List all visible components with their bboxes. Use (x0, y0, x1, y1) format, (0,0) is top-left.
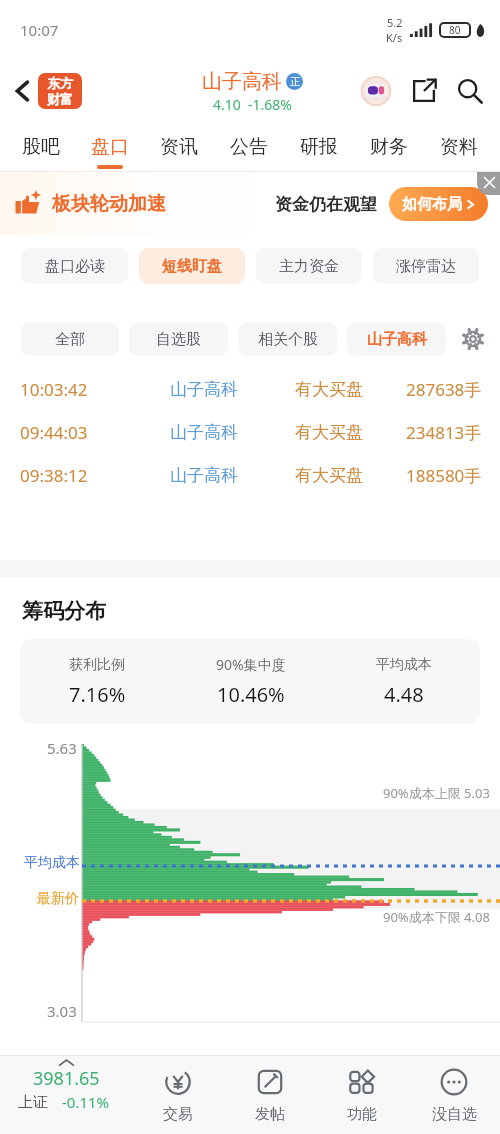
staticText: 盘口 (91, 135, 129, 159)
staticText: 平均成本 (24, 854, 80, 872)
staticText: 如何布局 (402, 195, 462, 214)
staticText: 自选股 (156, 330, 201, 349)
button[interactable]: 东方 (38, 73, 82, 109)
staticText: 287638手 (406, 378, 482, 401)
staticText: 交易 (163, 1105, 193, 1124)
button[interactable]: 研报 (284, 122, 354, 172)
button[interactable]: 自选股 (129, 322, 228, 356)
staticText: 没自选 (432, 1105, 477, 1124)
staticText: 相关个股 (258, 330, 318, 349)
staticText: 5.2 (387, 15, 403, 30)
staticText: 10:07 (20, 20, 59, 40)
staticText: 主力资金 (279, 257, 339, 276)
staticText: 板块轮动加速 (52, 192, 166, 216)
staticText: 234813手 (406, 421, 482, 444)
button[interactable]: Settings (456, 322, 490, 356)
staticText: 公告 (230, 135, 268, 159)
staticText: 东方 (47, 75, 73, 91)
button[interactable]: 如何布局 (389, 187, 488, 221)
staticText: 筹码分布 (22, 598, 106, 624)
staticText: 90%成本下限 4.08 (383, 908, 490, 926)
staticText: 山子高科 (170, 422, 238, 443)
button[interactable]: 相关个股 (238, 322, 337, 356)
staticText: 财富 (47, 91, 73, 107)
button[interactable]: 短线盯盘 (139, 248, 245, 284)
button[interactable]: 山子高科 (347, 322, 446, 356)
staticText: 涨停雷达 (396, 257, 456, 276)
staticText: 5.63 (47, 738, 77, 758)
staticText: 全部 (55, 330, 85, 349)
button[interactable]: Close banner (477, 172, 500, 195)
staticText: 获利比例 (69, 656, 125, 674)
button[interactable]: 财务 (354, 122, 424, 172)
staticText: K/s (386, 30, 403, 45)
staticText: 80 (449, 23, 461, 37)
button[interactable]: Share (406, 73, 442, 109)
staticText: 4.48 (384, 681, 424, 708)
button[interactable]: 3981.65 (0, 1056, 132, 1134)
button[interactable]: 盘口必读 (21, 248, 128, 284)
button[interactable]: 资讯 (144, 122, 214, 172)
button[interactable]: 交易 (132, 1056, 224, 1134)
button[interactable]: 发帖 (224, 1056, 316, 1134)
button[interactable]: 公告 (214, 122, 284, 172)
staticText: 资讯 (160, 135, 198, 159)
button[interactable]: 09:38:12 (0, 454, 500, 497)
button[interactable]: 10:03:42 (0, 368, 500, 411)
button[interactable]: 主力资金 (256, 248, 362, 284)
staticText: 股吧 (22, 135, 60, 159)
button[interactable]: Back (4, 72, 42, 110)
staticText: 3.03 (47, 1001, 77, 1021)
staticText: -0.11% (62, 1092, 110, 1112)
staticText: 资料 (440, 135, 478, 159)
staticText: 10.46% (217, 681, 285, 708)
staticText: 09:38:12 (20, 464, 88, 487)
button[interactable]: 涨停雷达 (373, 248, 479, 284)
staticText: 最新价 (37, 890, 79, 908)
staticText: 盘口必读 (45, 257, 105, 276)
button[interactable]: 09:44:03 (0, 411, 500, 454)
staticText: 资金仍在观望 (275, 194, 377, 215)
button[interactable]: 板块轮动加速 (0, 172, 500, 235)
staticText: 09:44:03 (20, 421, 88, 444)
staticText: 山子高科 (170, 379, 238, 400)
staticText: 有大买盘 (295, 422, 363, 443)
button[interactable]: 股吧 (6, 122, 75, 172)
staticText: 7.16% (69, 681, 126, 708)
staticText: 发帖 (255, 1105, 285, 1124)
staticText: 正 (290, 75, 300, 88)
staticText: 财务 (370, 135, 408, 159)
staticText: 研报 (300, 135, 338, 159)
staticText: 4.10 -1.68% (213, 95, 292, 114)
staticText: 功能 (347, 1105, 377, 1124)
staticText: 山子高科 (367, 330, 427, 349)
staticText: 3981.65 (33, 1066, 100, 1091)
staticText: 山子高科 (202, 69, 282, 94)
staticText: 短线盯盘 (162, 257, 222, 276)
staticText: 上证 (18, 1093, 48, 1112)
staticText: 平均成本 (376, 656, 432, 674)
staticText: 有大买盘 (295, 379, 363, 400)
staticText: 10:03:42 (20, 378, 88, 401)
button[interactable]: 资料 (424, 122, 494, 172)
staticText: 188580手 (406, 464, 482, 487)
button[interactable]: 盘口 (75, 122, 144, 172)
button[interactable]: 功能 (316, 1056, 408, 1134)
button[interactable]: 没自选 (408, 1056, 500, 1134)
button[interactable]: AI assistant (358, 73, 394, 109)
staticText: 山子高科 (170, 465, 238, 486)
button[interactable]: 全部 (21, 322, 119, 356)
button[interactable]: Search (452, 73, 488, 109)
staticText: 90%集中度 (216, 655, 286, 674)
staticText: 90%成本上限 5.03 (383, 784, 490, 802)
staticText: 有大买盘 (295, 465, 363, 486)
